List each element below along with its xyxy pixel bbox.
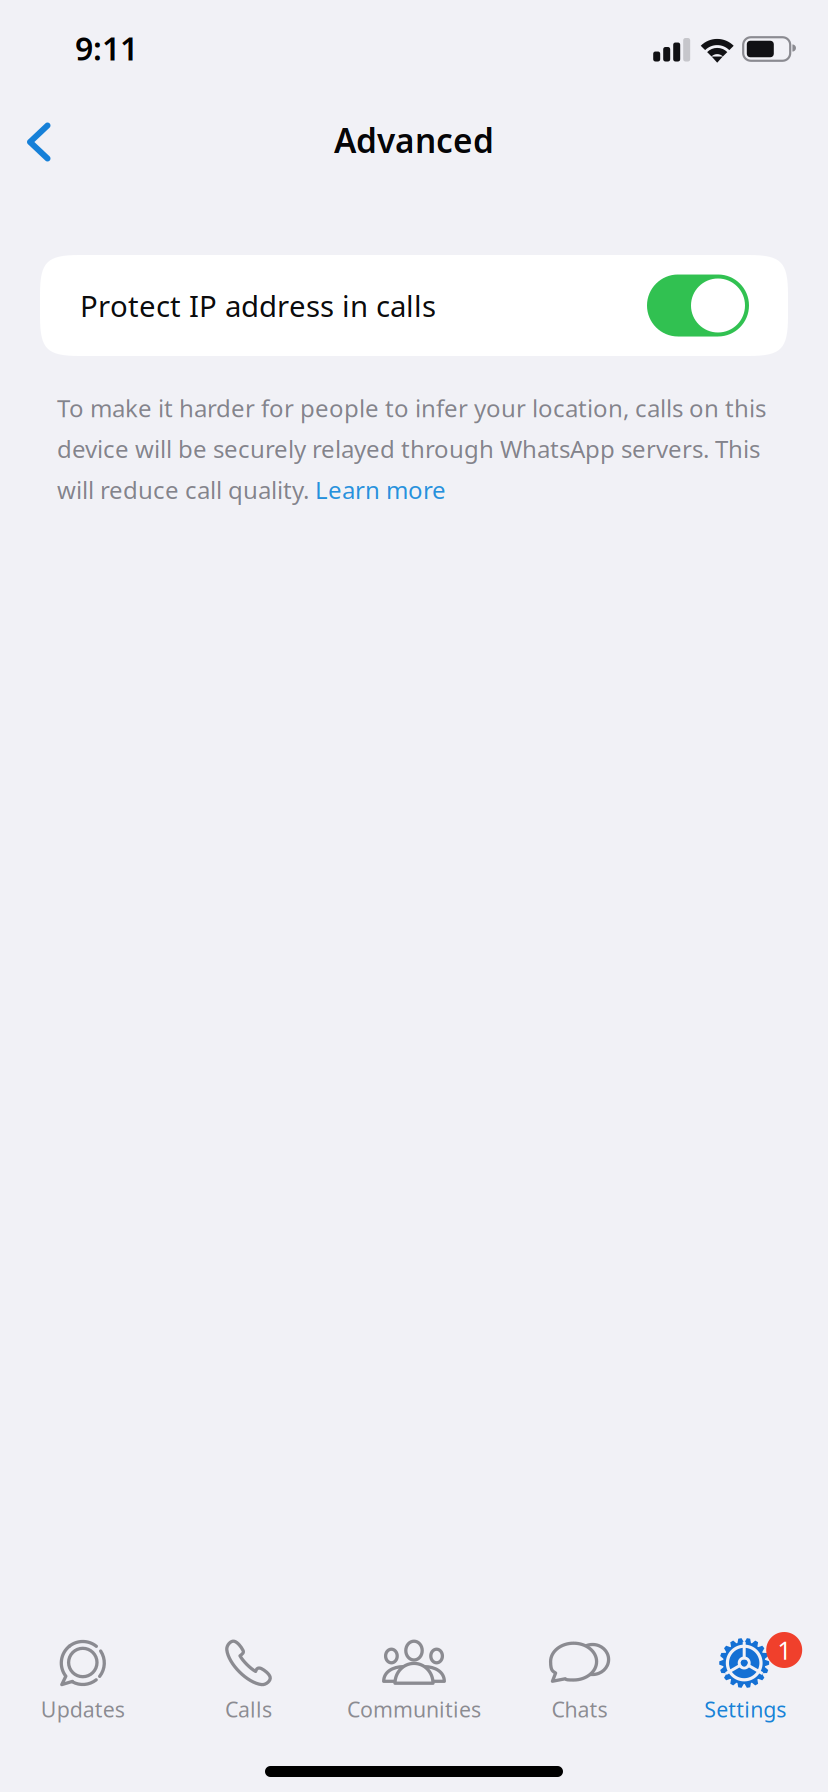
staticText: Updates <box>41 1695 125 1723</box>
staticText: Calls <box>225 1695 272 1723</box>
button[interactable]: Back <box>0 98 78 186</box>
button[interactable]: Chats <box>497 1638 662 1719</box>
staticText: To make it harder for people to infer yo… <box>57 392 766 506</box>
staticText: Communities <box>347 1695 481 1723</box>
staticText: Chats <box>552 1695 608 1723</box>
button[interactable]: Updates <box>0 1638 166 1719</box>
staticText: 9:11 <box>75 27 138 69</box>
button[interactable]: Calls <box>166 1638 331 1719</box>
button[interactable]: 1 <box>662 1638 828 1719</box>
staticText: Protect IP address in calls <box>80 286 436 325</box>
staticText: 1 <box>777 1633 791 1667</box>
button[interactable]: Protect IP address in calls <box>40 255 788 356</box>
button[interactable]: Communities <box>331 1638 497 1719</box>
staticText: Advanced <box>334 118 494 162</box>
staticText: Settings <box>704 1695 786 1723</box>
